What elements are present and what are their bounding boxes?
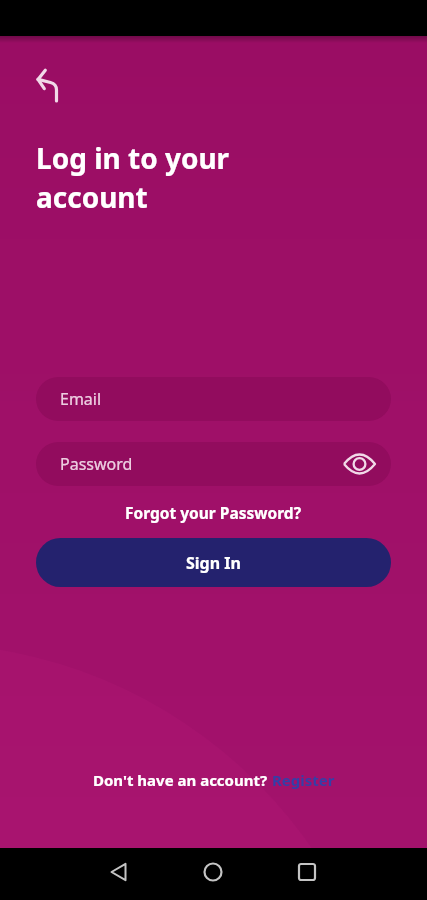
button[interactable] (343, 447, 377, 481)
button[interactable]: Forgot your Password? (125, 502, 302, 523)
staticText: Don't have an account? (93, 770, 272, 790)
button[interactable] (36, 66, 70, 100)
button[interactable]: Password (36, 442, 391, 486)
staticText: Log in to your account (36, 139, 230, 216)
staticText: Email (60, 388, 102, 410)
staticText: Password (60, 453, 133, 475)
button[interactable] (109, 862, 129, 882)
button[interactable]: Register (272, 770, 335, 790)
staticText: Sign In (186, 552, 241, 574)
button[interactable] (297, 862, 317, 882)
button[interactable]: Sign In (36, 538, 391, 587)
button[interactable] (203, 862, 223, 882)
button[interactable]: Email (36, 377, 391, 421)
